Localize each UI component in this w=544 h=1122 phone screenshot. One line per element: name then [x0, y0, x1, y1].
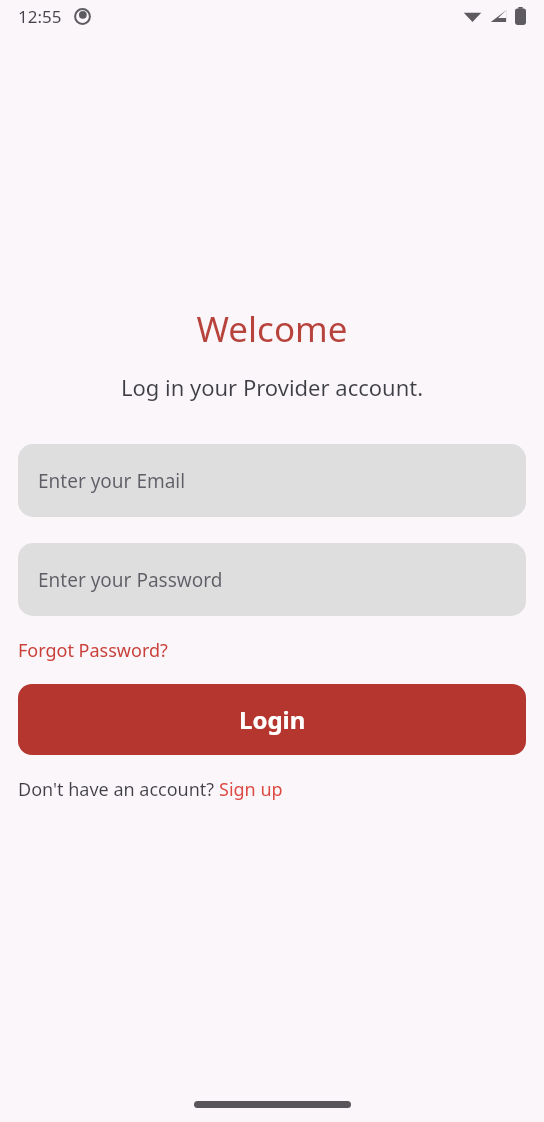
- button[interactable]: Sign up: [219, 777, 283, 802]
- staticText: 12:55: [18, 5, 62, 28]
- button[interactable]: Enter your Password: [18, 543, 526, 616]
- staticText: Sign up: [219, 777, 283, 802]
- staticText: Login: [239, 703, 306, 736]
- staticText: Enter your Email: [38, 468, 186, 494]
- button[interactable]: Enter your Email: [18, 444, 526, 517]
- button[interactable]: Login: [18, 684, 526, 755]
- staticText: Welcome: [0, 305, 544, 353]
- staticText: Log in your Provider account.: [0, 372, 544, 402]
- staticText: Don't have an account?: [18, 777, 219, 802]
- staticText: Forgot Password?: [18, 638, 168, 663]
- button[interactable]: Forgot Password?: [18, 638, 168, 663]
- staticText: Enter your Password: [38, 567, 223, 593]
